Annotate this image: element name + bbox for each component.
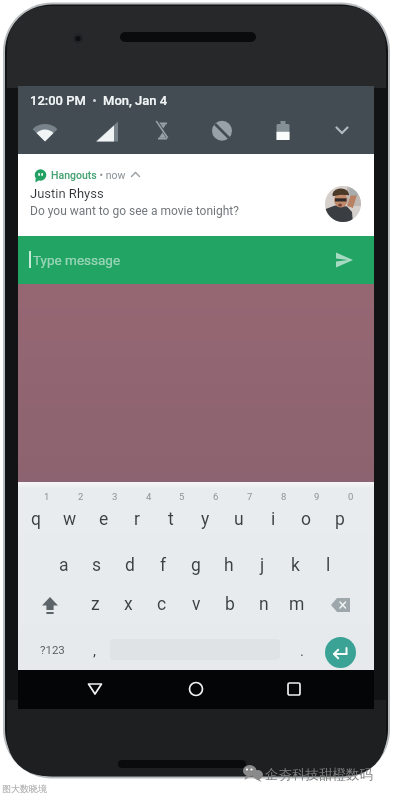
staticText: Type message [33, 252, 121, 268]
button[interactable]: g [178, 552, 214, 578]
button[interactable]: e [86, 506, 122, 532]
staticText: z [91, 594, 100, 615]
button[interactable]: d [112, 552, 148, 578]
staticText: x [124, 594, 133, 615]
staticText: b [225, 594, 235, 615]
staticText: d [125, 555, 135, 576]
staticText: Hangouts [51, 169, 97, 181]
button[interactable]: o [288, 506, 324, 532]
button[interactable]: w [52, 506, 88, 532]
button[interactable] [38, 592, 62, 618]
button[interactable]: b [212, 591, 248, 617]
staticText: r [134, 509, 140, 530]
staticText: 9 [314, 491, 320, 502]
button[interactable]: , [76, 638, 112, 664]
staticText: , [93, 642, 96, 660]
staticText: f [160, 555, 167, 576]
staticText: 3 [112, 491, 118, 502]
staticText: . [300, 642, 304, 660]
button[interactable] [18, 236, 374, 284]
staticText: o [301, 509, 311, 530]
staticText: h [224, 555, 234, 576]
button[interactable]: ?123 [34, 636, 70, 662]
staticText: 8 [281, 491, 287, 502]
button[interactable]: r [119, 506, 155, 532]
button[interactable] [336, 252, 354, 268]
button[interactable] [330, 596, 352, 614]
staticText: Justin Rhyss [30, 186, 104, 201]
staticText: • now [97, 169, 126, 181]
button[interactable] [325, 637, 356, 668]
button[interactable]: y [187, 506, 223, 532]
staticText: 企夯科技甜橙数码 [265, 766, 373, 783]
staticText: 5 [179, 491, 185, 502]
staticText: Mon, Jan 4 [103, 93, 168, 108]
staticText: 1 [44, 491, 50, 502]
button[interactable] [18, 154, 374, 236]
staticText: 6 [213, 491, 219, 502]
staticText: e [99, 509, 109, 530]
staticText: v [192, 594, 201, 615]
staticText: g [191, 555, 201, 576]
button[interactable]: q [18, 506, 54, 532]
button[interactable]: t [153, 506, 189, 532]
staticText: y [201, 509, 210, 530]
staticText: 12:00 PM [30, 93, 86, 108]
staticText: 图大数晓境 [2, 783, 47, 794]
button[interactable]: i [255, 506, 291, 532]
staticText: w [63, 509, 77, 530]
staticText: k [291, 555, 300, 576]
button[interactable]: k [277, 552, 313, 578]
staticText: c [157, 594, 167, 615]
button[interactable]: u [221, 506, 257, 532]
staticText: t [168, 509, 174, 530]
button[interactable]: a [46, 552, 82, 578]
button[interactable]: x [110, 591, 146, 617]
staticText: Do you want to go see a movie tonight? [30, 204, 239, 218]
button[interactable]: f [145, 552, 181, 578]
staticText: l [326, 555, 331, 576]
staticText: s [92, 555, 102, 576]
staticText: 2 [78, 491, 84, 502]
button[interactable]: n [246, 591, 282, 617]
staticText: u [234, 509, 244, 530]
button[interactable]: c [144, 591, 180, 617]
button[interactable]: j [244, 552, 280, 578]
button[interactable]: m [279, 591, 315, 617]
button[interactable]: h [211, 552, 247, 578]
staticText: q [31, 509, 41, 530]
staticText: i [271, 509, 276, 530]
staticText: n [259, 594, 269, 615]
staticText: 4 [146, 491, 152, 502]
button[interactable] [278, 673, 310, 705]
button[interactable] [79, 673, 111, 705]
button[interactable]: p [322, 506, 358, 532]
button[interactable] [180, 673, 212, 705]
staticText: 0 [348, 491, 354, 502]
staticText: m [289, 594, 305, 615]
staticText: p [335, 509, 345, 530]
staticText: ?123 [40, 643, 65, 656]
button[interactable]: v [178, 591, 214, 617]
button[interactable]: s [79, 552, 115, 578]
staticText: j [260, 555, 265, 576]
button[interactable]: z [77, 591, 113, 617]
button[interactable]: . [284, 638, 320, 664]
button[interactable]: l [310, 552, 346, 578]
staticText: 7 [247, 491, 253, 502]
staticText: a [59, 555, 69, 576]
